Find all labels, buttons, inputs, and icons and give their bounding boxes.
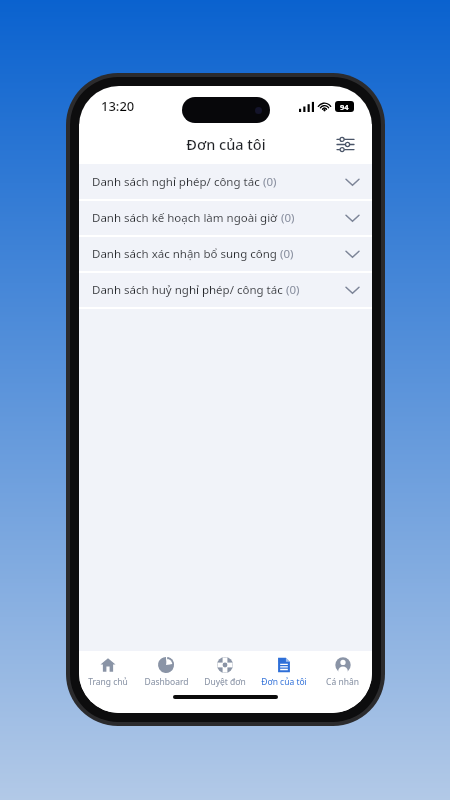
staticText: Danh sách huỷ nghỉ phép/ công tác <box>92 282 283 298</box>
button[interactable]: Cá nhân <box>313 651 372 693</box>
staticText: Đơn của tôi <box>261 676 307 688</box>
staticText: Dashboard <box>144 676 189 688</box>
staticText: (0) <box>263 174 277 190</box>
button[interactable]: Danh sách huỷ nghỉ phép/ công tác <box>79 273 372 307</box>
button[interactable]: Duyệt đơn <box>195 651 254 693</box>
staticText: Đơn của tôi <box>186 134 266 154</box>
button[interactable]: Danh sách xác nhận bổ sung công <box>79 237 372 271</box>
staticText: Cá nhân <box>326 676 359 688</box>
staticText: Trang chủ <box>88 676 128 688</box>
button[interactable]: Danh sách nghỉ phép/ công tác <box>79 165 372 199</box>
button[interactable]: Đơn của tôi <box>254 651 313 693</box>
button[interactable]: Filter <box>328 127 362 161</box>
staticText: Duyệt đơn <box>204 676 246 688</box>
staticText: (0) <box>286 282 300 298</box>
staticText: Danh sách xác nhận bổ sung công <box>92 246 277 262</box>
staticText: 13:20 <box>101 97 135 115</box>
staticText: 94 <box>340 102 349 112</box>
staticText: (0) <box>280 246 294 262</box>
button[interactable]: Trang chủ <box>79 651 137 693</box>
staticText: (0) <box>281 210 295 226</box>
staticText: Danh sách kế hoạch làm ngoài giờ <box>92 210 278 226</box>
button[interactable]: Dashboard <box>137 651 195 693</box>
button[interactable]: Danh sách kế hoạch làm ngoài giờ <box>79 201 372 235</box>
staticText: Danh sách nghỉ phép/ công tác <box>92 174 260 190</box>
